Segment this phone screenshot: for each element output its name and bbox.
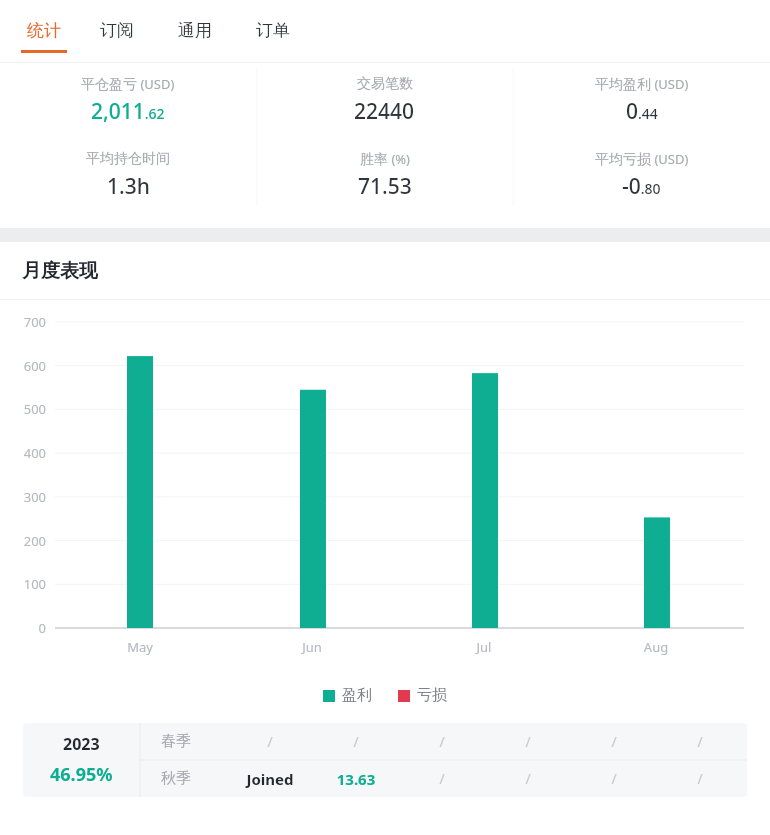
- staticText: 交易笔数: [357, 75, 413, 93]
- staticText: /: [332, 732, 380, 751]
- staticText: May: [116, 638, 164, 656]
- button[interactable]: 订阅: [78, 0, 156, 63]
- staticText: 0: [14, 619, 46, 637]
- staticText: 平仓盈亏 (USD): [81, 75, 175, 93]
- staticText: /: [676, 732, 724, 751]
- staticText: 600: [14, 357, 46, 375]
- staticText: Aug: [632, 638, 680, 656]
- staticText: 平均持仓时间: [86, 150, 170, 168]
- staticText: 秋季: [161, 769, 191, 788]
- staticText: 2023: [63, 733, 100, 755]
- staticText: 22440: [354, 97, 415, 126]
- staticText: /: [418, 732, 466, 751]
- button[interactable]: 2023: [23, 723, 747, 797]
- staticText: Jul: [460, 638, 508, 656]
- staticText: 盈利: [342, 686, 372, 705]
- staticText: /: [504, 769, 552, 788]
- staticText: Joined: [246, 769, 294, 789]
- staticText: 400: [14, 444, 46, 462]
- button[interactable]: 统计: [10, 0, 78, 63]
- button[interactable]: 订单: [234, 0, 312, 63]
- staticText: -0.80: [622, 172, 661, 201]
- staticText: 46.95%: [50, 762, 113, 787]
- staticText: 100: [14, 575, 46, 593]
- staticText: /: [418, 769, 466, 788]
- staticText: /: [504, 732, 552, 751]
- staticText: 71.53: [358, 172, 412, 201]
- staticText: Jun: [288, 638, 336, 656]
- staticText: 平均亏损 (USD): [595, 150, 689, 168]
- staticText: 订阅: [100, 20, 134, 41]
- staticText: /: [246, 732, 294, 751]
- staticText: 0.44: [626, 97, 658, 126]
- staticText: /: [590, 732, 638, 751]
- staticText: 订单: [256, 20, 290, 41]
- staticText: 13.63: [332, 769, 380, 789]
- staticText: /: [676, 769, 724, 788]
- staticText: 500: [14, 400, 46, 418]
- staticText: 平均盈利 (USD): [595, 75, 689, 93]
- staticText: 月度表现: [22, 259, 98, 283]
- staticText: 胜率 (%): [360, 150, 410, 168]
- staticText: 亏损: [417, 686, 447, 705]
- staticText: 300: [14, 488, 46, 506]
- button[interactable]: 通用: [156, 0, 234, 63]
- staticText: 700: [14, 313, 46, 331]
- staticText: 2,011.62: [91, 97, 165, 126]
- staticText: 统计: [27, 20, 61, 41]
- staticText: 1.3h: [107, 172, 150, 201]
- staticText: 通用: [178, 20, 212, 41]
- staticText: /: [590, 769, 638, 788]
- staticText: 春季: [161, 732, 191, 751]
- staticText: 200: [14, 532, 46, 550]
